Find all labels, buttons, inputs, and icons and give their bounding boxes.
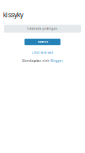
button[interactable]: Blogger (50, 59, 62, 63)
staticText: Lihat versi web (31, 51, 53, 54)
staticText: kissyky (3, 11, 23, 19)
staticText: Beranda (37, 40, 47, 43)
staticText: Diberdayakan oleh (21, 59, 50, 63)
staticText: Blogger (50, 59, 62, 63)
button[interactable]: Beranda (24, 39, 60, 45)
staticText: . (62, 59, 63, 63)
staticText: Tidak ada postingan. (26, 27, 58, 30)
button[interactable]: Lihat versi web (31, 51, 53, 54)
